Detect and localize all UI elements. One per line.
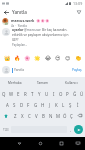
staticText: Bir kaç kazandın. (42, 28, 68, 32)
staticText: W (9, 91, 14, 97)
button[interactable]: Ş (67, 99, 74, 110)
button[interactable]: Kullanıcı (57, 77, 85, 88)
button[interactable]: R (22, 88, 29, 99)
button[interactable]: Send (74, 125, 83, 134)
staticText: A (6, 102, 9, 108)
button[interactable]: Recent apps (56, 138, 67, 149)
button[interactable]: J (46, 99, 53, 110)
button[interactable]: Tamam (29, 77, 57, 88)
button[interactable]: B (40, 110, 47, 121)
staticText: C (28, 113, 31, 119)
button[interactable]: Emoji reaction (74, 54, 82, 62)
staticText: O (59, 91, 63, 97)
button[interactable]: Emoji reaction (64, 54, 72, 62)
staticText: I (53, 91, 55, 97)
button[interactable]: K (53, 99, 60, 110)
button[interactable]: A (4, 99, 11, 110)
staticText: ayarlar (12, 28, 24, 32)
button[interactable]: C (26, 110, 33, 121)
staticText: D (20, 102, 24, 108)
staticText: Merhaba (8, 81, 22, 85)
staticText: X (21, 113, 24, 119)
button[interactable]: Ö (61, 110, 68, 121)
button[interactable]: . (67, 125, 74, 134)
staticText: 🌸🌸🌸 (36, 19, 50, 23)
button[interactable]: Ç (68, 110, 75, 121)
staticText: S (13, 102, 16, 108)
button[interactable]: H (39, 99, 46, 110)
button[interactable]: N (47, 110, 54, 121)
staticText: H (41, 102, 45, 108)
button[interactable]: E (15, 88, 22, 99)
staticText: İ (77, 102, 79, 108)
button[interactable]: Shift (0, 110, 11, 121)
button[interactable]: İ (74, 99, 81, 110)
button[interactable]: U (43, 88, 50, 99)
button[interactable]: Emoji reaction (44, 54, 52, 62)
staticText: ?123 (3, 128, 9, 132)
staticText: 4s · Yanıtla (11, 24, 27, 27)
staticText: Ş (69, 102, 72, 108)
staticText: L (62, 102, 65, 108)
button[interactable]: M (54, 110, 61, 121)
button[interactable]: P (64, 88, 71, 99)
staticText: Y (38, 91, 41, 97)
staticText: V (35, 113, 38, 119)
staticText: 👑 (4, 55, 11, 61)
staticText: E (17, 91, 20, 97)
button[interactable]: ?123 (1, 125, 11, 134)
staticText: Ü (80, 91, 84, 97)
staticText: 👏 (75, 55, 82, 61)
staticText: T (31, 91, 34, 97)
button[interactable]: Send reply (75, 8, 83, 16)
staticText: 🌟 (34, 55, 41, 61)
button[interactable]: W (8, 88, 15, 99)
button[interactable]: D (18, 99, 25, 110)
button[interactable]: Z (11, 110, 19, 121)
staticText: Ğ (73, 91, 77, 97)
staticText: 13:09 (73, 1, 83, 6)
staticText: F (27, 102, 30, 108)
staticText: . (70, 127, 72, 133)
staticText: R (24, 91, 27, 97)
button[interactable]: T (29, 88, 36, 99)
button[interactable]: Paylaş (71, 67, 83, 73)
button[interactable]: F (25, 99, 32, 110)
button[interactable]: Emoji reaction (3, 54, 11, 62)
staticText: 😂 (45, 55, 52, 61)
button[interactable]: Q (0, 88, 8, 99)
button[interactable]: Merhaba (0, 77, 29, 88)
staticText: P (66, 91, 69, 97)
button[interactable]: L (60, 99, 67, 110)
button[interactable]: Back (2, 8, 10, 16)
staticText: Kullanıcı (65, 81, 78, 85)
button[interactable]: Emoji reaction (23, 54, 31, 62)
button[interactable]: Home (35, 138, 46, 149)
button[interactable]: I (50, 88, 57, 99)
staticText: etkinlik ve paylaşım aksiyonlarınız için (12, 33, 69, 37)
button[interactable]: S (11, 99, 18, 110)
button[interactable]: Ü (78, 88, 85, 99)
button[interactable]: O (57, 88, 64, 99)
button[interactable]: Y (36, 88, 43, 99)
staticText: K (55, 102, 58, 108)
button[interactable]: G (32, 99, 39, 110)
button[interactable]: Emoji reaction (13, 54, 21, 62)
staticText: Yanıtla (12, 9, 27, 15)
button[interactable]: V (33, 110, 40, 121)
staticText: Ö (63, 113, 67, 119)
staticText: GIF? (12, 38, 19, 42)
staticText: Q (2, 91, 6, 97)
button[interactable]: Emoji reaction (54, 54, 62, 62)
button[interactable]: Emoji reaction (33, 54, 41, 62)
button[interactable]: Backspace (75, 110, 85, 121)
staticText: 😍 (55, 55, 61, 61)
button[interactable]: Ğ (71, 88, 78, 99)
button[interactable]: Hide keyboard (73, 139, 82, 148)
staticText: @marcusw (24, 28, 42, 32)
staticText: Paylaş (72, 68, 82, 72)
button[interactable]: X (19, 110, 26, 121)
button[interactable]: Back (14, 138, 25, 149)
staticText: G (34, 102, 38, 108)
